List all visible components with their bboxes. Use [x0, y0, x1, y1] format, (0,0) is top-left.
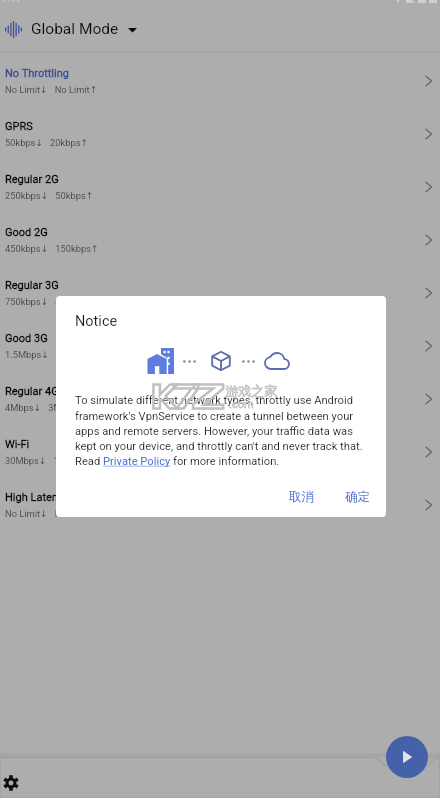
- staticText: Regular 3G: [5, 279, 59, 292]
- staticText: 30Mbps↓ 15Mbps↑: [5, 455, 96, 466]
- staticText: 1.5Mbps↓ 750kbps↑: [5, 349, 100, 360]
- button[interactable]: Regular 3G: [0, 266, 440, 319]
- staticText: 750kbps↓ 400kbps↑: [5, 296, 99, 307]
- button[interactable]: Start: [386, 736, 428, 778]
- staticText: High Latency DNS: [5, 491, 94, 504]
- button[interactable]: Good 3G: [0, 319, 440, 372]
- button[interactable]: 取消: [276, 480, 327, 514]
- staticText: 游戏之家: [225, 383, 277, 399]
- button[interactable]: High Latency DNS: [0, 478, 440, 531]
- staticText: 确定: [345, 489, 370, 505]
- staticText: .com: [229, 398, 254, 411]
- staticText: No Limit↓ No Limit↑: [5, 508, 98, 519]
- staticText: Wi-Fi: [5, 438, 30, 451]
- staticText: Good 3G: [5, 332, 48, 345]
- button[interactable]: Global Mode: [0, 9, 137, 49]
- button[interactable]: Settings: [0, 770, 24, 796]
- staticText: To simulate different network types, thr…: [75, 394, 369, 468]
- staticText: GPRS: [5, 120, 33, 133]
- button[interactable]: Regular 2G: [0, 160, 440, 213]
- button[interactable]: Wi-Fi: [0, 425, 440, 478]
- button[interactable]: No Throttling: [0, 54, 440, 107]
- button[interactable]: 确定: [332, 480, 383, 514]
- button[interactable]: Good 2G: [0, 213, 440, 266]
- staticText: Global Mode: [31, 20, 119, 38]
- staticText: Regular 2G: [5, 173, 59, 186]
- staticText: No Throttling: [5, 67, 69, 80]
- staticText: Notice: [75, 313, 118, 330]
- staticText: 取消: [289, 489, 314, 505]
- staticText: 250kbps↓ 50kbps↑: [5, 190, 94, 201]
- staticText: Regular 4G: [5, 385, 59, 398]
- staticText: 450kbps↓ 150kbps↑: [5, 243, 99, 254]
- button[interactable]: Regular 4G: [0, 372, 440, 425]
- button[interactable]: GPRS: [0, 107, 440, 160]
- staticText: Good 2G: [5, 226, 48, 239]
- staticText: No Limit↓ No Limit↑: [5, 84, 98, 95]
- staticText: 50kbps↓ 20kbps↑: [5, 137, 89, 148]
- staticText: 4Mbps↓ 3Mbps↑: [5, 402, 85, 413]
